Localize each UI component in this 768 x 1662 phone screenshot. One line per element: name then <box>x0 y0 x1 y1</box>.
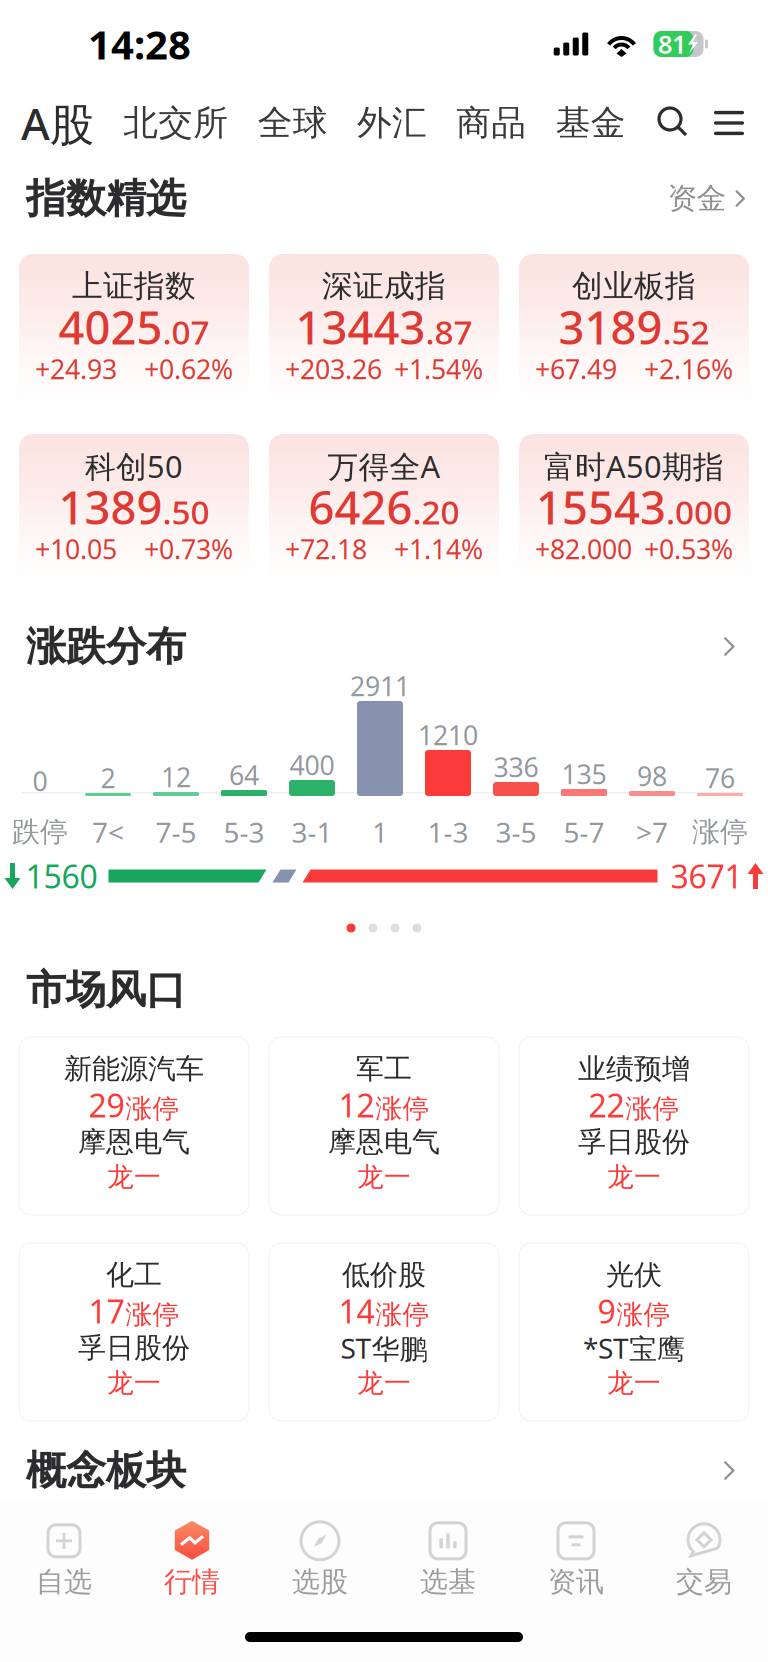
staticText: 化工 <box>106 1258 162 1292</box>
button[interactable]: 北交所 <box>123 92 228 154</box>
button[interactable]: 商品 <box>456 92 526 154</box>
staticText: 22 <box>588 1084 624 1126</box>
staticText: 摩恩电气 <box>328 1125 440 1159</box>
staticText: 17 <box>88 1290 124 1332</box>
staticText: .20 <box>412 489 459 534</box>
staticText: +1.14% <box>394 531 483 567</box>
button[interactable]: 资金 <box>668 181 746 217</box>
staticText: 2 <box>100 760 115 796</box>
staticText: 1560 <box>25 855 97 897</box>
staticText: 指数精选 <box>26 174 186 223</box>
button[interactable]: 低价股 <box>269 1243 499 1421</box>
button[interactable]: 资讯 <box>512 1500 640 1618</box>
button[interactable]: 外汇 <box>357 92 427 154</box>
staticText: 外汇 <box>357 102 427 144</box>
button[interactable]: 上证指数 <box>19 254 249 405</box>
staticText: 400 <box>289 747 334 783</box>
button[interactable]: 富时A50期指 <box>519 434 749 585</box>
staticText: *ST宝鹰 <box>583 1329 685 1367</box>
button[interactable]: 自选 <box>0 1500 128 1618</box>
staticText: 业绩预增 <box>578 1052 690 1086</box>
staticText: 5-3 <box>223 813 264 851</box>
staticText: 135 <box>561 756 606 792</box>
staticText: 7-5 <box>155 813 196 851</box>
staticText: 军工 <box>356 1052 412 1086</box>
staticText: .07 <box>162 309 209 354</box>
staticText: A股 <box>21 94 94 152</box>
staticText: 14 <box>338 1290 374 1332</box>
staticText: 北交所 <box>123 102 228 144</box>
staticText: 13443 <box>295 297 425 357</box>
staticText: 跌停 <box>12 815 68 849</box>
button[interactable]: A股 <box>21 92 94 154</box>
staticText: 科创50 <box>85 446 183 486</box>
button[interactable]: 交易 <box>640 1500 768 1618</box>
staticText: 龙一 <box>107 1367 161 1399</box>
button[interactable]: 万得全A <box>269 434 499 585</box>
staticText: 涨停 <box>692 815 748 849</box>
staticText: 涨停 <box>616 1298 670 1331</box>
staticText: 选基 <box>420 1565 476 1599</box>
staticText: 资讯 <box>548 1565 604 1599</box>
staticText: +2.16% <box>644 351 733 387</box>
staticText: 基金 <box>556 102 626 144</box>
staticText: +0.62% <box>144 351 233 387</box>
staticText: 富时A50期指 <box>544 446 724 486</box>
button[interactable]: 军工 <box>269 1037 499 1215</box>
staticText: .52 <box>662 309 709 354</box>
button[interactable]: Search <box>655 92 691 154</box>
button[interactable]: 新能源汽车 <box>19 1037 249 1215</box>
staticText: 孚日股份 <box>78 1331 190 1365</box>
staticText: 7< <box>92 813 124 851</box>
staticText: 选股 <box>292 1565 348 1599</box>
staticText: 涨停 <box>625 1092 679 1125</box>
staticText: 2911 <box>350 668 410 704</box>
button[interactable]: Menu <box>713 92 745 154</box>
button[interactable]: 选股 <box>256 1500 384 1618</box>
staticText: 3-1 <box>291 813 332 851</box>
staticText: ST华鹏 <box>340 1329 427 1367</box>
staticText: 光伏 <box>606 1258 662 1292</box>
staticText: +10.05 <box>35 531 117 567</box>
staticText: 新能源汽车 <box>64 1052 204 1086</box>
staticText: +203.26 <box>285 351 382 387</box>
staticText: 龙一 <box>357 1161 411 1193</box>
staticText: 摩恩电气 <box>78 1125 190 1159</box>
staticText: 1389 <box>58 477 162 537</box>
button[interactable]: 行情 <box>128 1500 256 1618</box>
button[interactable]: 全球 <box>258 92 328 154</box>
staticText: 15543 <box>536 477 666 537</box>
button[interactable]: 选基 <box>384 1500 512 1618</box>
staticText: 创业板指 <box>572 267 696 305</box>
staticText: 上证指数 <box>72 267 196 305</box>
button[interactable]: More <box>714 1453 744 1489</box>
button[interactable]: More <box>714 627 744 667</box>
staticText: 低价股 <box>342 1258 426 1292</box>
staticText: 3-5 <box>495 813 536 851</box>
staticText: +1.54% <box>394 351 483 387</box>
button[interactable]: 业绩预增 <box>519 1037 749 1215</box>
button[interactable]: 创业板指 <box>519 254 749 405</box>
staticText: 98 <box>637 758 667 794</box>
staticText: 孚日股份 <box>578 1125 690 1159</box>
button[interactable]: 科创50 <box>19 434 249 585</box>
staticText: 资金 <box>668 181 726 217</box>
staticText: .000 <box>666 489 732 534</box>
staticText: 64 <box>229 757 259 793</box>
staticText: 概念板块 <box>26 1446 186 1495</box>
button[interactable]: 基金 <box>556 92 626 154</box>
button[interactable]: 化工 <box>19 1243 249 1421</box>
staticText: 万得全A <box>327 446 440 486</box>
staticText: +0.73% <box>144 531 233 567</box>
staticText: 5-7 <box>563 813 604 851</box>
staticText: >7 <box>636 813 668 851</box>
button[interactable]: 深证成指 <box>269 254 499 405</box>
staticText: .50 <box>162 489 209 534</box>
staticText: 涨跌分布 <box>26 622 186 671</box>
staticText: 全球 <box>258 102 328 144</box>
staticText: 81 <box>658 27 686 61</box>
button[interactable]: 光伏 <box>519 1243 749 1421</box>
staticText: 龙一 <box>607 1161 661 1193</box>
staticText: 1 <box>372 813 388 851</box>
staticText: 12 <box>161 759 191 795</box>
